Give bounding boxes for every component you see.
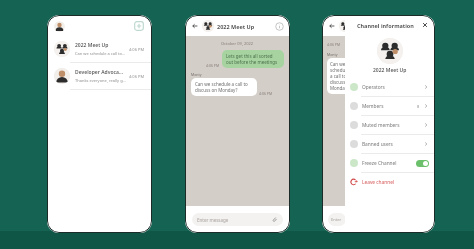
staticText: Can we schedule a call to discuss on Mon… (195, 81, 253, 93)
staticText: 4:06 PM (129, 47, 145, 52)
button[interactable]: Operators (345, 78, 434, 96)
staticText: Leave channel (362, 179, 395, 186)
staticText: October 09, 2022 (221, 41, 254, 46)
button[interactable]: Muted members (345, 116, 434, 134)
staticText: Monty (327, 52, 338, 57)
staticText: 2022 Meet Up (75, 42, 109, 49)
staticText: Enter (331, 217, 342, 222)
button[interactable]: Channel information (275, 22, 284, 31)
staticText: 2022 Meet Up (373, 67, 407, 74)
staticText: 4:06 PM (327, 42, 341, 47)
button[interactable]: Members (345, 97, 434, 115)
staticText: Enter message (197, 217, 229, 223)
button[interactable]: Back (191, 22, 199, 30)
button[interactable]: Leave channel (345, 173, 434, 191)
button[interactable]: Close (421, 21, 429, 29)
button[interactable]: Can we schedule a call to discuss on Mon… (191, 78, 257, 96)
staticText: 2022 Meet Up (217, 23, 255, 30)
button[interactable]: Profile (54, 21, 65, 32)
button[interactable] (416, 160, 429, 167)
staticText: Members (362, 103, 384, 110)
staticText: Freeze Channel (362, 160, 397, 167)
button[interactable]: Create channel (133, 20, 145, 32)
staticText: Developer Advoca... (75, 69, 124, 76)
button[interactable]: Developer Advoca... (48, 63, 151, 89)
other: Attach (271, 216, 278, 223)
staticText: Can we schedule a call to discuss on Mon… (75, 51, 126, 56)
staticText: 4:06 PM (206, 63, 220, 68)
staticText: Monty (191, 72, 202, 77)
staticText: Can we schedule a call to discuss on Mon… (330, 61, 352, 91)
staticText: Thanks everyone, really going so far! (75, 78, 126, 83)
staticText: Banned users (362, 141, 393, 148)
button[interactable]: Banned users (345, 135, 434, 153)
button[interactable]: Lets get this all sorted out before the … (222, 50, 284, 68)
staticText: 4:06 PM (129, 74, 145, 79)
staticText: Muted members (362, 122, 400, 129)
button[interactable]: Enter message (192, 213, 283, 226)
staticText: Operators (362, 84, 385, 91)
staticText: 4:06 PM (259, 91, 273, 96)
staticText: Lets get this all sorted out before the … (226, 53, 280, 65)
staticText: Channel information (357, 22, 414, 29)
staticText: 8 (417, 104, 420, 109)
button[interactable]: 2022 Meet Up (48, 36, 151, 62)
button[interactable]: Freeze Channel (345, 154, 434, 172)
